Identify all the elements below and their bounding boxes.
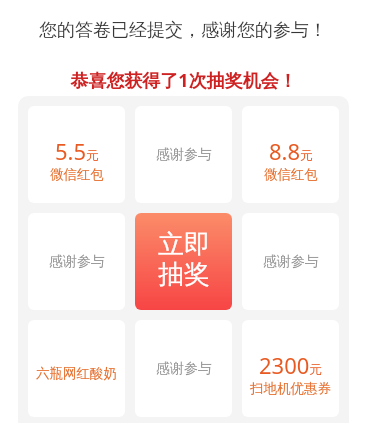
staticText: 您的答卷已经提交，感谢您的参与！ [39, 19, 327, 42]
staticText: 感谢参与 [263, 253, 319, 271]
staticText: 扫地机优惠券 [250, 380, 331, 397]
staticText: 8.8元 [269, 136, 314, 166]
staticText: 2300元 [259, 350, 323, 380]
staticText: 5.5元 [55, 136, 100, 166]
staticText: 感谢参与 [49, 253, 105, 271]
staticText: 立即 抽奖 [158, 228, 210, 291]
button[interactable]: 5.5 元 微信红包 [28, 106, 125, 203]
staticText: 感谢参与 [156, 360, 212, 378]
staticText: 微信红包 [264, 166, 318, 183]
staticText: 微信红包 [50, 166, 104, 183]
button[interactable]: 感谢参与 [28, 213, 125, 310]
button[interactable]: 感谢参与 [135, 320, 232, 417]
button[interactable]: 2300 元 扫地机优惠券 [242, 320, 339, 417]
button[interactable]: 六瓶网红酸奶 [28, 320, 125, 417]
button[interactable]: 立即抽奖 [135, 213, 232, 310]
staticText: 感谢参与 [156, 146, 212, 164]
button[interactable]: 感谢参与 [242, 213, 339, 310]
button[interactable]: 感谢参与 [135, 106, 232, 203]
staticText: 六瓶网红酸奶 [36, 365, 117, 382]
staticText: 恭喜您获得了1次抽奖机会！ [70, 68, 297, 93]
button[interactable]: 8.8 元 微信红包 [242, 106, 339, 203]
